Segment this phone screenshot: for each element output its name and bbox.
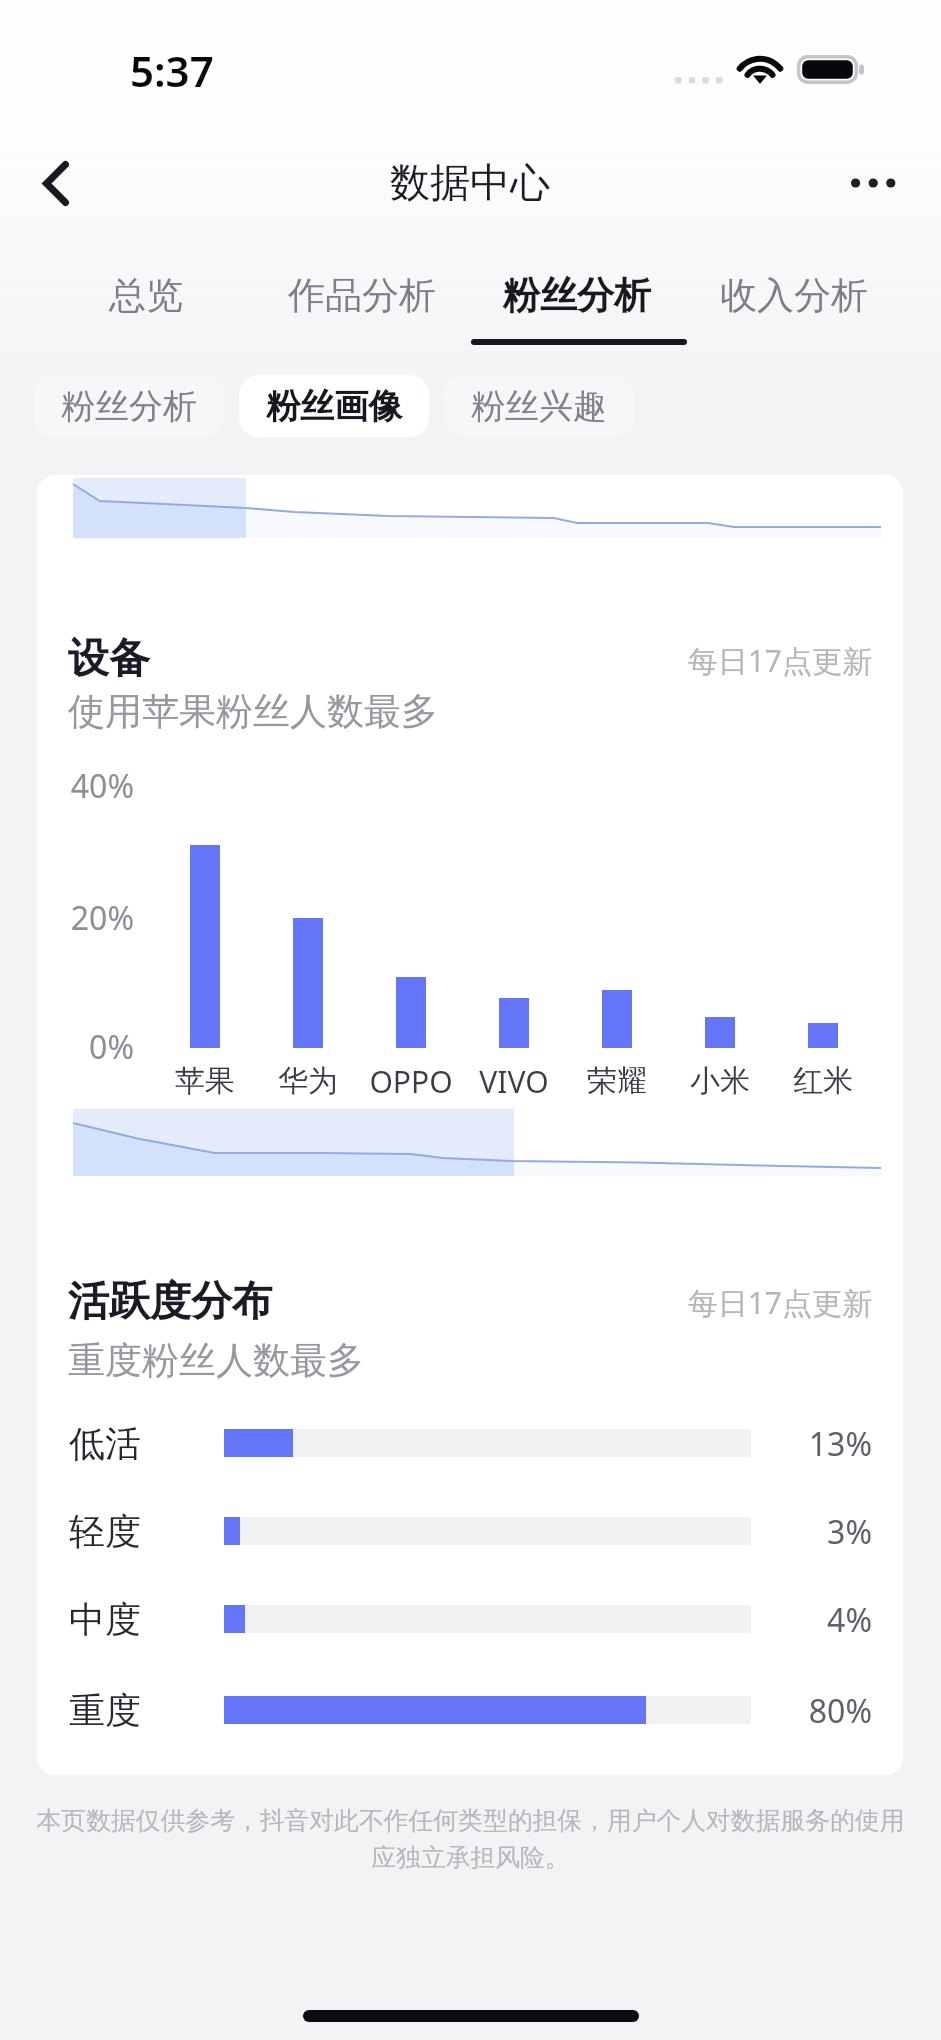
staticText: 5:37 bbox=[130, 42, 214, 99]
staticText: 设备 bbox=[68, 633, 150, 685]
staticText: 4% bbox=[760, 1598, 872, 1642]
staticText: 80% bbox=[760, 1689, 872, 1733]
button[interactable]: 粉丝画像 bbox=[239, 375, 429, 437]
staticText: 重度粉丝人数最多 bbox=[68, 1337, 364, 1384]
staticText: 3% bbox=[760, 1510, 872, 1554]
button[interactable]: 粉丝分析 bbox=[34, 375, 224, 437]
staticText: 华为 bbox=[278, 1062, 338, 1100]
button[interactable]: Back bbox=[16, 143, 96, 223]
button[interactable] bbox=[469, 248, 685, 348]
staticText: 中度 bbox=[69, 1597, 141, 1642]
staticText: 活跃度分布 bbox=[68, 1276, 273, 1328]
staticText: 粉丝兴趣 bbox=[471, 385, 607, 428]
staticText: 使用苹果粉丝人数最多 bbox=[68, 688, 438, 735]
staticText: 粉丝画像 bbox=[266, 385, 402, 428]
staticText: 粉丝分析 bbox=[61, 385, 197, 428]
staticText: 本页数据仅供参考，抖音对此不作任何类型的担保，用户个人对数据服务的使用 应独立承… bbox=[10, 1805, 931, 1873]
staticText: 收入分析 bbox=[720, 272, 868, 319]
staticText: 轻度 bbox=[69, 1509, 141, 1554]
button[interactable] bbox=[686, 248, 902, 348]
button[interactable]: More options bbox=[833, 143, 913, 223]
staticText: 红米 bbox=[793, 1062, 853, 1100]
staticText: OPPO bbox=[369, 1061, 453, 1102]
staticText: 20% bbox=[0, 896, 134, 940]
button[interactable] bbox=[254, 248, 470, 348]
button[interactable]: 粉丝兴趣 bbox=[444, 375, 634, 437]
staticText: 低活 bbox=[69, 1421, 141, 1466]
staticText: 0% bbox=[0, 1025, 134, 1069]
staticText: 13% bbox=[760, 1422, 872, 1466]
button[interactable] bbox=[38, 248, 254, 348]
staticText: 苹果 bbox=[175, 1062, 235, 1100]
staticText: 作品分析 bbox=[288, 272, 436, 319]
staticText: 数据中心 bbox=[390, 157, 550, 207]
staticText: 荣耀 bbox=[587, 1062, 647, 1100]
staticText: 重度 bbox=[69, 1688, 141, 1733]
staticText: VIVO bbox=[479, 1061, 549, 1102]
staticText: 总览 bbox=[109, 272, 183, 319]
staticText: 每日17点更新 bbox=[500, 1282, 872, 1323]
staticText: 40% bbox=[0, 764, 134, 808]
staticText: 小米 bbox=[690, 1062, 750, 1100]
staticText: 每日17点更新 bbox=[500, 640, 872, 681]
staticText: 粉丝分析 bbox=[503, 272, 651, 319]
